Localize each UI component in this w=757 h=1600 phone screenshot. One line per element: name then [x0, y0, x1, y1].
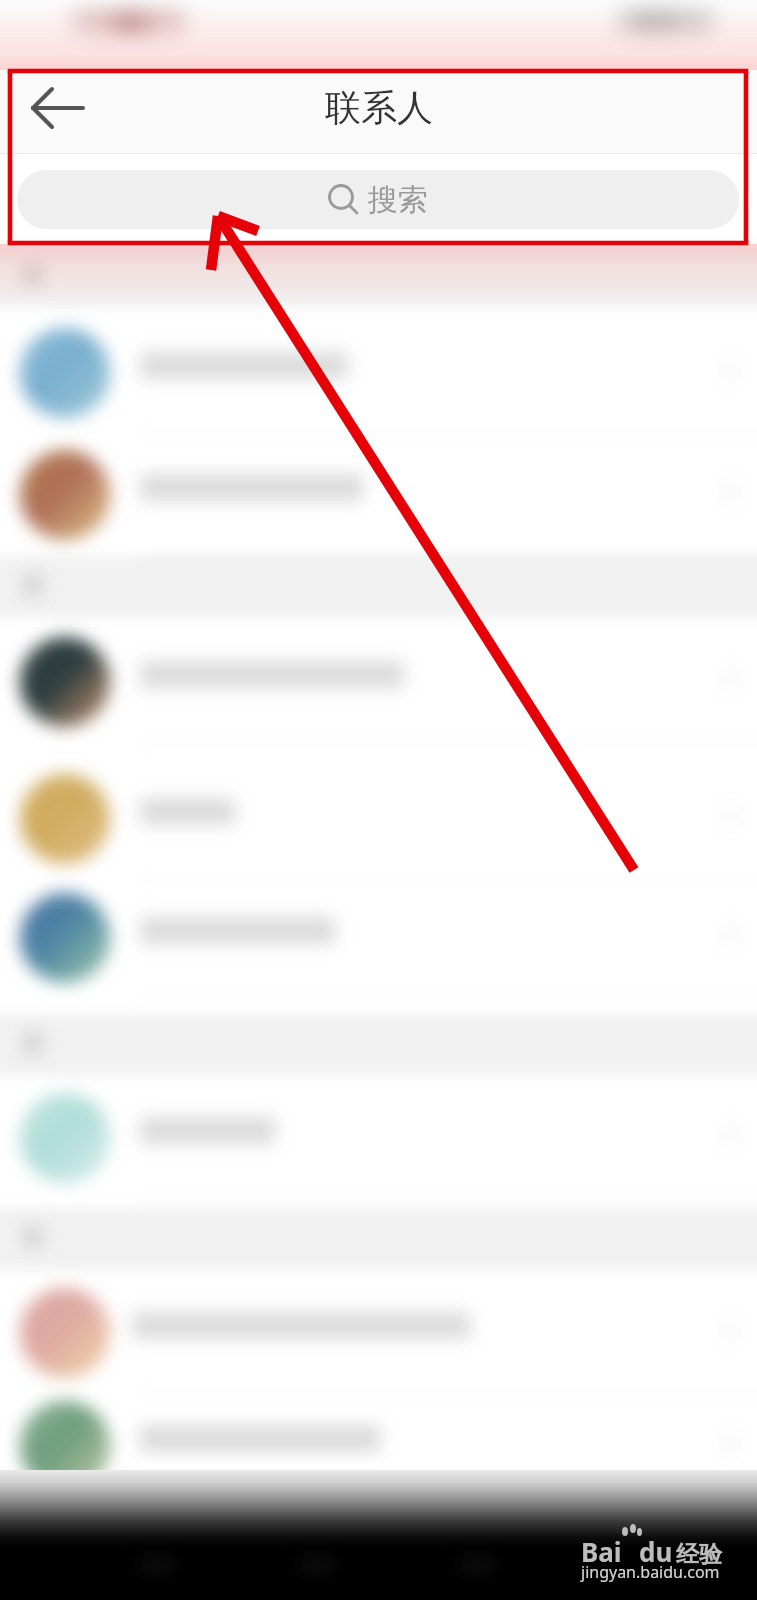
staticText: 经验 [676, 1540, 722, 1569]
button[interactable] [0, 1273, 757, 1393]
button[interactable]: Back [0, 70, 112, 154]
staticText: du [639, 1534, 673, 1569]
staticText: 搜索 [368, 181, 428, 219]
button[interactable] [0, 878, 757, 998]
button[interactable] [0, 313, 757, 433]
button[interactable] [0, 435, 757, 555]
button[interactable] [0, 759, 757, 879]
staticText: Bai [581, 1534, 622, 1569]
button[interactable]: 搜索 [17, 170, 739, 229]
button[interactable] [0, 1078, 757, 1198]
button[interactable] [0, 622, 757, 742]
button[interactable] [0, 1386, 757, 1506]
staticText: jingyan.baidu.com [581, 1561, 720, 1583]
staticText: 联系人 [325, 85, 433, 130]
